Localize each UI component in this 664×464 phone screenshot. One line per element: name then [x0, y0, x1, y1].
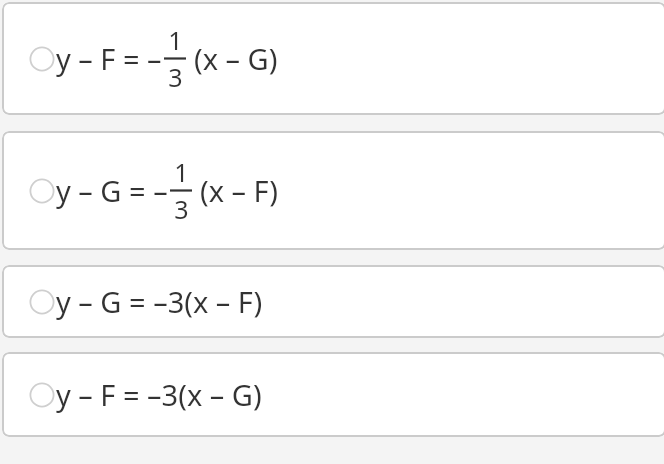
button[interactable]: Select answer	[2, 131, 664, 250]
button[interactable]: Select answer	[2, 2, 664, 115]
staticText: y – G = –	[56, 171, 168, 210]
staticText: (x – F)	[200, 171, 278, 210]
staticText: (x – G)	[194, 39, 278, 78]
staticText: 3	[174, 192, 189, 226]
staticText: 1	[174, 155, 189, 189]
button[interactable]: Select answer	[2, 352, 664, 437]
staticText: y – F = –3(x – G)	[56, 375, 262, 414]
other: Select answer	[29, 382, 55, 408]
staticText: y – G = –3(x – F)	[56, 282, 263, 321]
other: Select answer	[29, 178, 55, 204]
staticText: y – F = –	[56, 39, 162, 78]
staticText: 3	[168, 60, 183, 94]
staticText: 1	[168, 23, 183, 57]
other: Select answer	[29, 46, 55, 72]
button[interactable]: Select answer	[2, 265, 664, 338]
other: Select answer	[29, 289, 55, 315]
